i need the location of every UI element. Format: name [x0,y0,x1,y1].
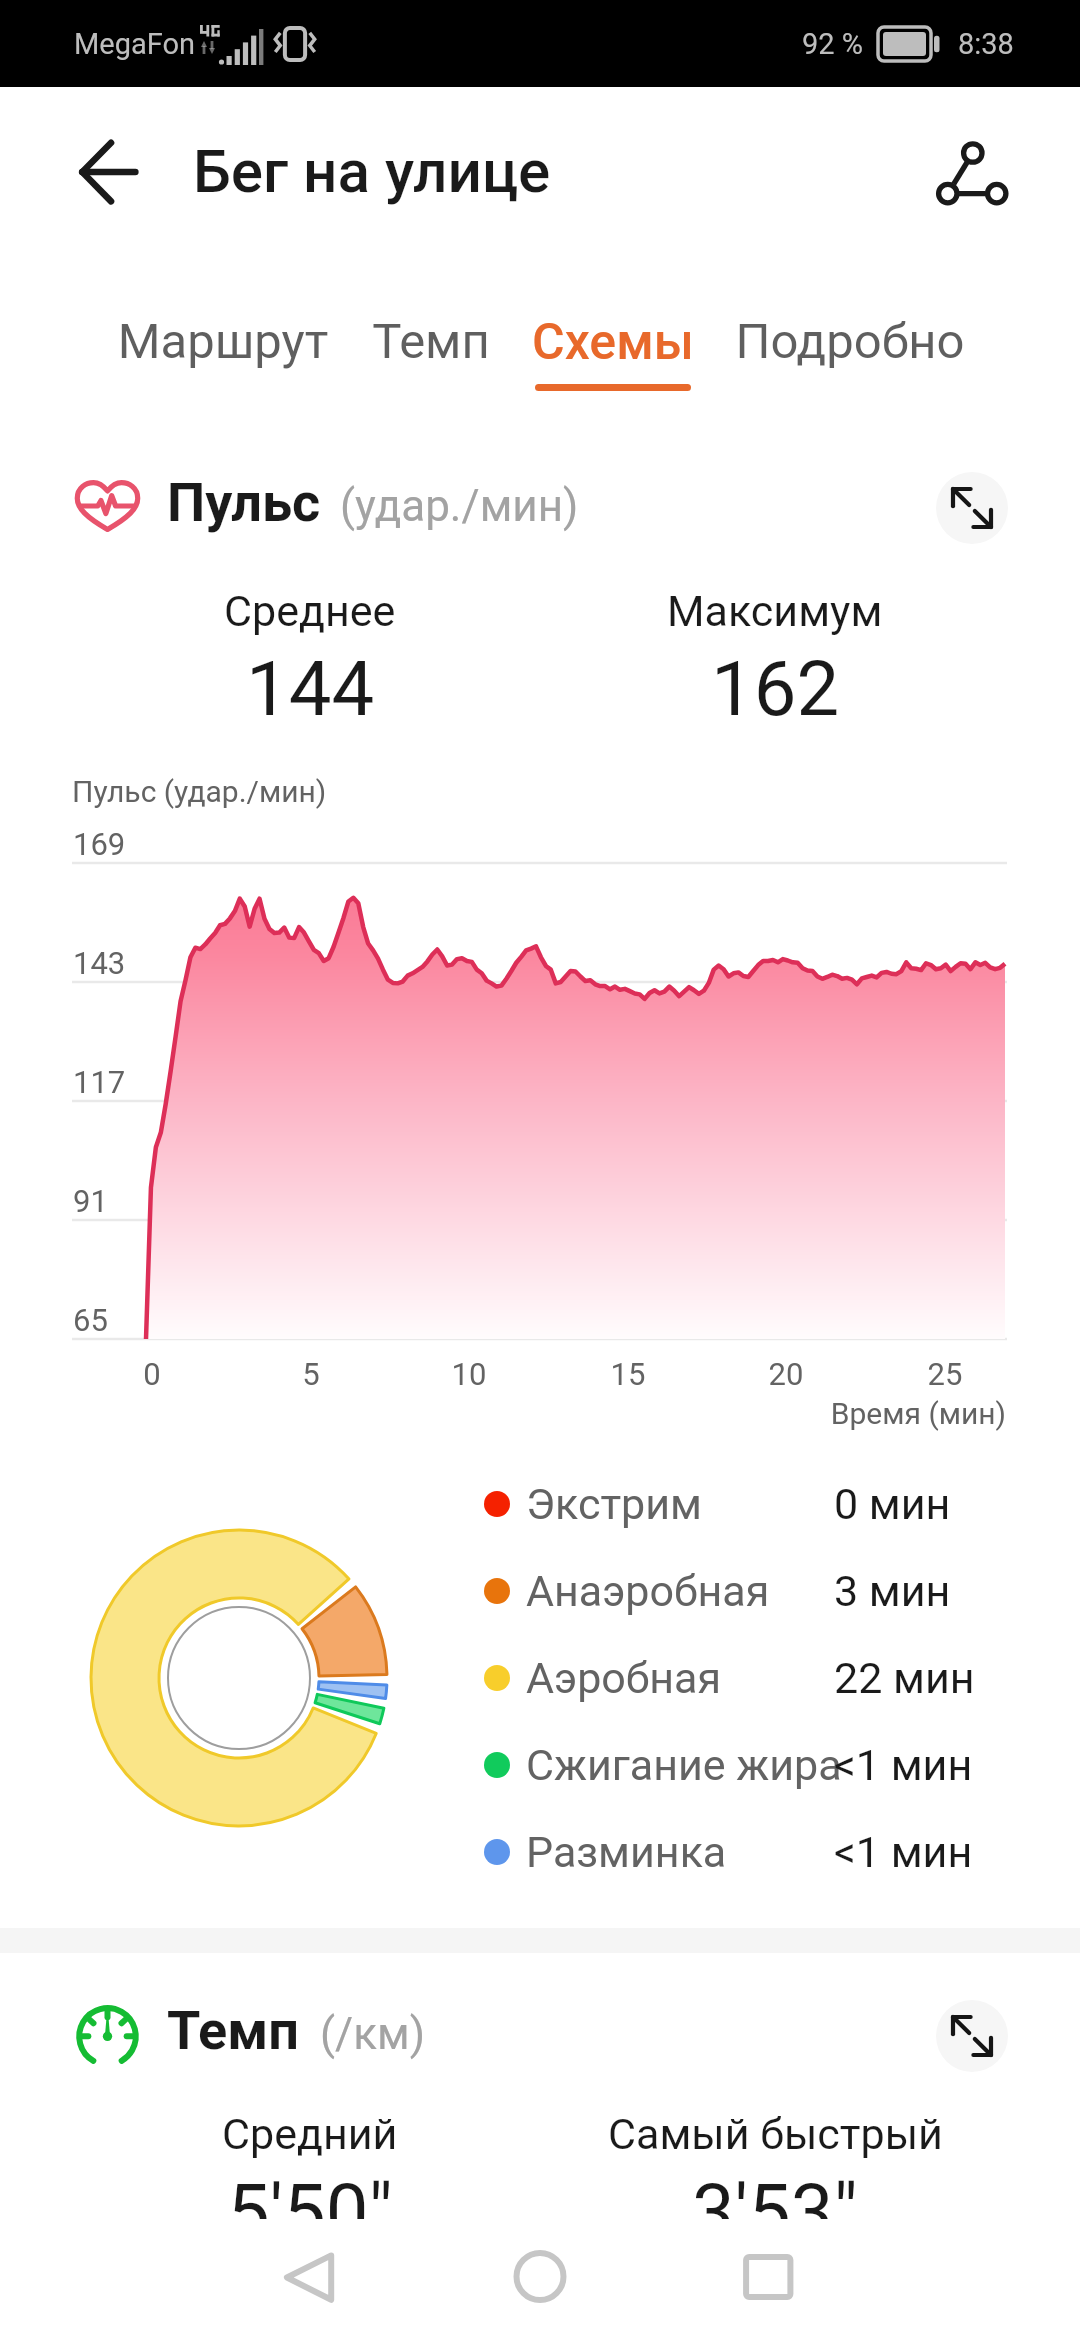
staticText: <1 мин [834,1740,973,1790]
staticText: 117 [73,1064,126,1100]
staticText: Пульс [167,471,321,534]
staticText: Максимум [667,586,883,636]
button[interactable]: Разминка [470,1809,960,1895]
button[interactable]: Анаэробная [470,1548,960,1634]
button[interactable]: Маршрут [103,313,343,413]
button[interactable]: Back [261,2229,357,2325]
staticText: 92 % [802,27,864,61]
staticText: Аэробная [526,1653,722,1703]
staticText: Пульс (удар./мин) [72,774,327,809]
staticText: 91 [73,1183,108,1219]
button[interactable]: Share [924,126,1020,222]
staticText: (/км) [320,2008,425,2060]
staticText: 3 мин [834,1566,951,1616]
staticText: 5'50" [227,2167,393,2256]
button[interactable]: Аэробная [470,1635,960,1721]
staticText: 5 [251,1356,371,1392]
staticText: 162 [711,644,840,733]
staticText: 143 [73,945,126,981]
staticText: 65 [73,1302,108,1338]
staticText: 20 [726,1356,846,1392]
staticText: 10 [409,1356,529,1392]
staticText: Темп [311,313,551,370]
staticText: Среднее [224,586,396,636]
staticText: 8:38 [958,27,1014,61]
staticText: Сжигание жира [526,1740,842,1790]
staticText: Маршрут [103,313,343,370]
staticText: <1 мин [834,1827,973,1877]
button[interactable]: Подробно [730,313,970,413]
staticText: Схемы [493,313,733,372]
button[interactable]: Схемы [493,313,733,413]
button[interactable]: Back [60,121,156,217]
button[interactable]: Экстрим [470,1461,960,1547]
button[interactable]: Сжигание жира [470,1722,960,1808]
staticText: 3'53" [692,2167,858,2256]
staticText: Разминка [526,1827,727,1877]
staticText: MegaFon [74,27,196,61]
button[interactable]: Темп [311,313,551,413]
staticText: Самый быстрый [608,2109,943,2159]
button[interactable]: Home [492,2229,588,2325]
button[interactable]: Recents [720,2229,816,2325]
staticText: Подробно [730,313,970,370]
staticText: Экстрим [526,1479,702,1529]
staticText: 25 [885,1356,1005,1392]
staticText: 0 [92,1356,212,1392]
staticText: Темп [167,1999,299,2062]
button[interactable]: Expand chart [936,472,1008,544]
staticText: 0 мин [834,1479,951,1529]
staticText: Средний [222,2109,398,2159]
staticText: Время (мин) [600,1396,1006,1431]
staticText: Бег на улице [193,136,551,206]
staticText: Анаэробная [526,1566,770,1616]
staticText: 144 [246,644,375,733]
staticText: 22 мин [834,1653,975,1703]
staticText: 15 [568,1356,688,1392]
button[interactable]: Expand chart [936,2000,1008,2072]
staticText: (удар./мин) [340,480,579,532]
staticText: 169 [73,826,126,862]
